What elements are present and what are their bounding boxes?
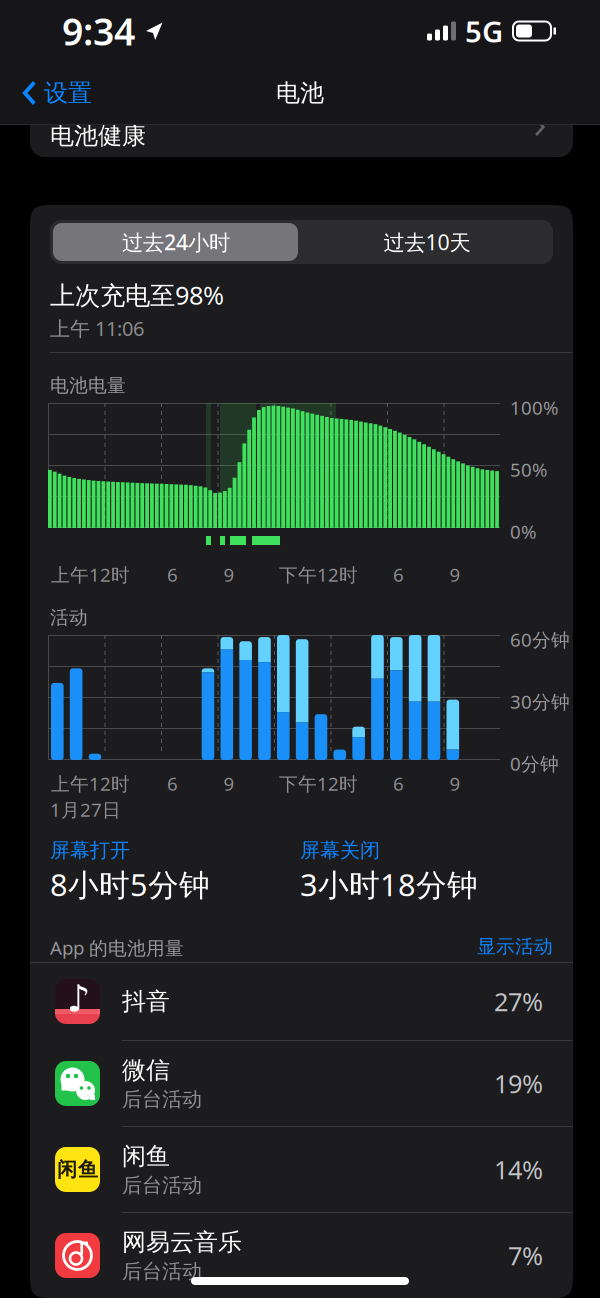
staticText: 19% xyxy=(494,1067,543,1100)
staticText: 6 xyxy=(393,771,404,796)
staticText: 上次充电至98% xyxy=(50,278,224,312)
staticText: 鱼 xyxy=(78,1157,98,1182)
button[interactable]: 设置 xyxy=(0,78,92,108)
staticText: 后台活动 xyxy=(122,1087,202,1112)
staticText: 上午12时 xyxy=(51,562,130,587)
staticText: 5G xyxy=(465,11,503,50)
staticText: 微信 xyxy=(122,1055,170,1085)
staticText: 活动 xyxy=(50,606,88,629)
staticText: App 的电池用量 xyxy=(50,935,184,960)
staticText: 9 xyxy=(223,562,234,587)
staticText: 8小时5分钟 xyxy=(50,864,210,905)
staticText: 下午12时 xyxy=(279,562,358,587)
button[interactable]: 过去10天 xyxy=(301,220,552,264)
staticText: 100% xyxy=(510,395,559,420)
staticText: 30分钟 xyxy=(510,689,570,714)
staticText: 9:34 xyxy=(62,6,135,56)
button[interactable]: 微信 xyxy=(30,1041,573,1126)
staticText: 0分钟 xyxy=(510,751,559,776)
staticText: 抖音 xyxy=(122,987,170,1016)
staticText: 27% xyxy=(494,985,543,1018)
button[interactable]: 闲 xyxy=(30,1127,573,1212)
staticText: 7% xyxy=(508,1239,543,1272)
staticText: 显示活动 xyxy=(477,935,553,958)
staticText: 网易云音乐 xyxy=(122,1227,242,1257)
button[interactable]: 网易云音乐 xyxy=(30,1213,573,1298)
staticText: ♪ xyxy=(66,977,90,1020)
staticText: 闲 xyxy=(57,1157,77,1182)
staticText: 9 xyxy=(223,771,234,796)
staticText: 6 xyxy=(167,771,178,796)
button[interactable]: ♪ xyxy=(30,963,573,1040)
button[interactable]: 显示活动 xyxy=(477,935,553,958)
staticText: 过去24小时 xyxy=(122,228,230,256)
staticText: 3小时18分钟 xyxy=(300,864,478,905)
staticText: 电池健康 xyxy=(50,121,146,150)
staticText: 后台活动 xyxy=(122,1259,202,1284)
staticText: 1月27日 xyxy=(50,797,121,822)
staticText: 14% xyxy=(494,1153,543,1186)
staticText: 50% xyxy=(510,457,548,482)
staticText: 电池电量 xyxy=(50,374,126,397)
staticText: 下午12时 xyxy=(279,771,358,796)
staticText: 6 xyxy=(167,562,178,587)
staticText: 后台活动 xyxy=(122,1173,202,1198)
staticText: 闲鱼 xyxy=(122,1141,170,1171)
button[interactable]: 过去24小时 xyxy=(50,220,301,264)
staticText: 电池 xyxy=(276,78,324,108)
staticText: 上午 11:06 xyxy=(50,315,144,342)
staticText: 60分钟 xyxy=(510,627,570,652)
staticText: 9 xyxy=(449,771,460,796)
staticText: 屏幕打开 xyxy=(50,838,130,863)
staticText: 9 xyxy=(449,562,460,587)
staticText: 6 xyxy=(393,562,404,587)
staticText: 上午12时 xyxy=(51,771,130,796)
staticText: 过去10天 xyxy=(383,228,470,256)
staticText: 0% xyxy=(510,519,537,544)
staticText: 设置 xyxy=(44,78,92,108)
staticText: 屏幕关闭 xyxy=(300,838,380,863)
